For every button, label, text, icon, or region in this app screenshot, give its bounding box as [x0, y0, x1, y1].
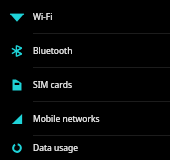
button[interactable]: SIM cards: [0, 68, 170, 101]
staticText: Data usage: [33, 142, 79, 154]
button[interactable]: Bluetooth: [0, 34, 170, 67]
staticText: SIM cards: [33, 79, 72, 91]
staticText: Bluetooth: [33, 45, 73, 57]
staticText: Mobile networks: [33, 113, 100, 125]
button[interactable]: Data usage: [0, 136, 170, 160]
button[interactable]: Wi-Fi: [0, 0, 170, 33]
staticText: Wi-Fi: [33, 11, 53, 23]
button[interactable]: Mobile networks: [0, 102, 170, 135]
